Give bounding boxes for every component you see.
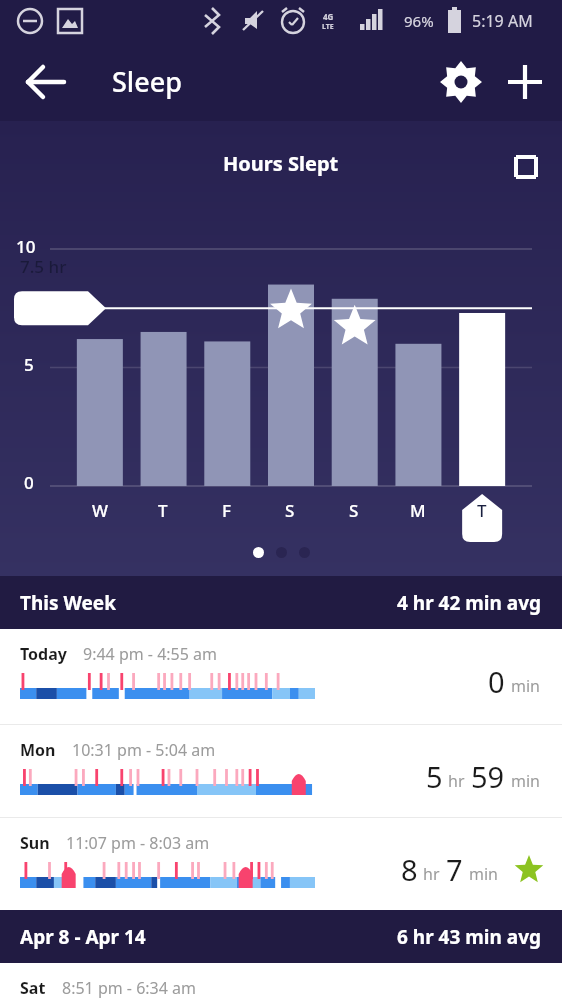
staticText: 8 bbox=[401, 850, 418, 889]
staticText: 5 bbox=[24, 353, 34, 376]
staticText: 6 hr 43 min avg bbox=[397, 924, 542, 950]
staticText: 59 bbox=[471, 757, 505, 796]
staticText: Hours Slept bbox=[223, 150, 339, 177]
staticText: 96% bbox=[404, 11, 434, 31]
staticText: Sun bbox=[20, 832, 50, 854]
staticText: 10 bbox=[16, 235, 36, 258]
staticText: 11:07 pm - 8:03 am bbox=[66, 832, 210, 854]
staticText: 4 hr 42 min avg bbox=[397, 590, 542, 616]
staticText: 9:44 pm - 4:55 am bbox=[83, 643, 218, 665]
staticText: F bbox=[222, 499, 231, 522]
staticText: This Week bbox=[20, 590, 116, 616]
staticText: hr bbox=[448, 770, 465, 792]
staticText: min bbox=[511, 770, 540, 792]
staticText: M bbox=[410, 499, 426, 522]
staticText: 5 bbox=[426, 757, 443, 796]
button[interactable]: Sun bbox=[0, 818, 562, 910]
staticText: 8:51 pm - 6:34 am bbox=[62, 977, 197, 999]
button[interactable]: Apr 8 - Apr 14 bbox=[0, 910, 562, 963]
staticText: Today bbox=[20, 643, 67, 665]
staticText: hr bbox=[423, 863, 440, 885]
button[interactable]: Sat bbox=[0, 963, 562, 999]
staticText: 5:19 AM bbox=[472, 10, 533, 32]
staticText: 7.5 hr bbox=[20, 255, 67, 278]
staticText: Sleep bbox=[112, 63, 182, 100]
staticText: min bbox=[469, 863, 498, 885]
staticText: 0 bbox=[24, 471, 34, 494]
button[interactable]: This Week bbox=[0, 576, 562, 629]
staticText: Mon bbox=[20, 739, 56, 761]
button[interactable]: Add bbox=[500, 57, 550, 107]
staticText: min bbox=[511, 675, 540, 697]
button[interactable]: Mon bbox=[0, 725, 562, 817]
staticText: LTE bbox=[322, 22, 334, 32]
staticText: 7 bbox=[446, 850, 463, 889]
staticText: Apr 8 - Apr 14 bbox=[20, 924, 146, 950]
staticText: S bbox=[285, 499, 295, 522]
button[interactable]: Fullscreen bbox=[504, 145, 548, 189]
staticText: Sat bbox=[20, 977, 46, 999]
staticText: 0 bbox=[488, 662, 505, 701]
staticText: T bbox=[477, 499, 487, 522]
button[interactable]: Today bbox=[0, 629, 562, 724]
button[interactable]: Back bbox=[14, 57, 64, 107]
button[interactable]: Settings bbox=[436, 57, 486, 107]
staticText: S bbox=[349, 499, 359, 522]
staticText: 10:31 pm - 5:04 am bbox=[72, 739, 216, 761]
staticText: W bbox=[92, 499, 108, 522]
staticText: 4G bbox=[323, 11, 334, 22]
staticText: T bbox=[158, 499, 168, 522]
